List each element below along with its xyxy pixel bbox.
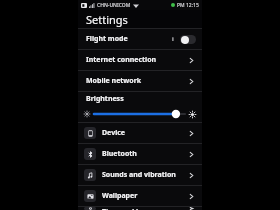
staticText: CHN-UNICOM: [97, 2, 131, 9]
button[interactable]: Sounds and vibration: [78, 165, 202, 185]
button[interactable]: Time and language: [78, 207, 202, 210]
button[interactable]: Bluetooth: [78, 144, 202, 164]
button[interactable]: Internet connection: [78, 50, 202, 70]
staticText: Device: [102, 128, 126, 138]
staticText: Time and language: [102, 207, 169, 210]
staticText: Settings: [86, 12, 128, 27]
staticText: Bluetooth: [102, 149, 137, 159]
button[interactable]: Device: [78, 123, 202, 143]
staticText: Flight mode: [86, 34, 128, 44]
staticText: Sounds and vibration: [102, 170, 176, 180]
button[interactable]: Mobile network: [78, 71, 202, 91]
staticText: i: [172, 35, 174, 43]
button[interactable]: Flight mode info: [169, 35, 177, 43]
button[interactable]: Brightness: [78, 92, 202, 122]
staticText: Internet connection: [86, 55, 157, 65]
staticText: Wallpaper: [102, 191, 138, 201]
staticText: PM 12:15: [177, 2, 199, 9]
button[interactable]: Flight mode: [78, 29, 202, 49]
staticText: Mobile network: [86, 76, 142, 86]
button[interactable]: Flight mode toggle: [180, 35, 196, 44]
button[interactable]: Wallpaper: [78, 186, 202, 206]
staticText: Brightness: [86, 94, 124, 104]
